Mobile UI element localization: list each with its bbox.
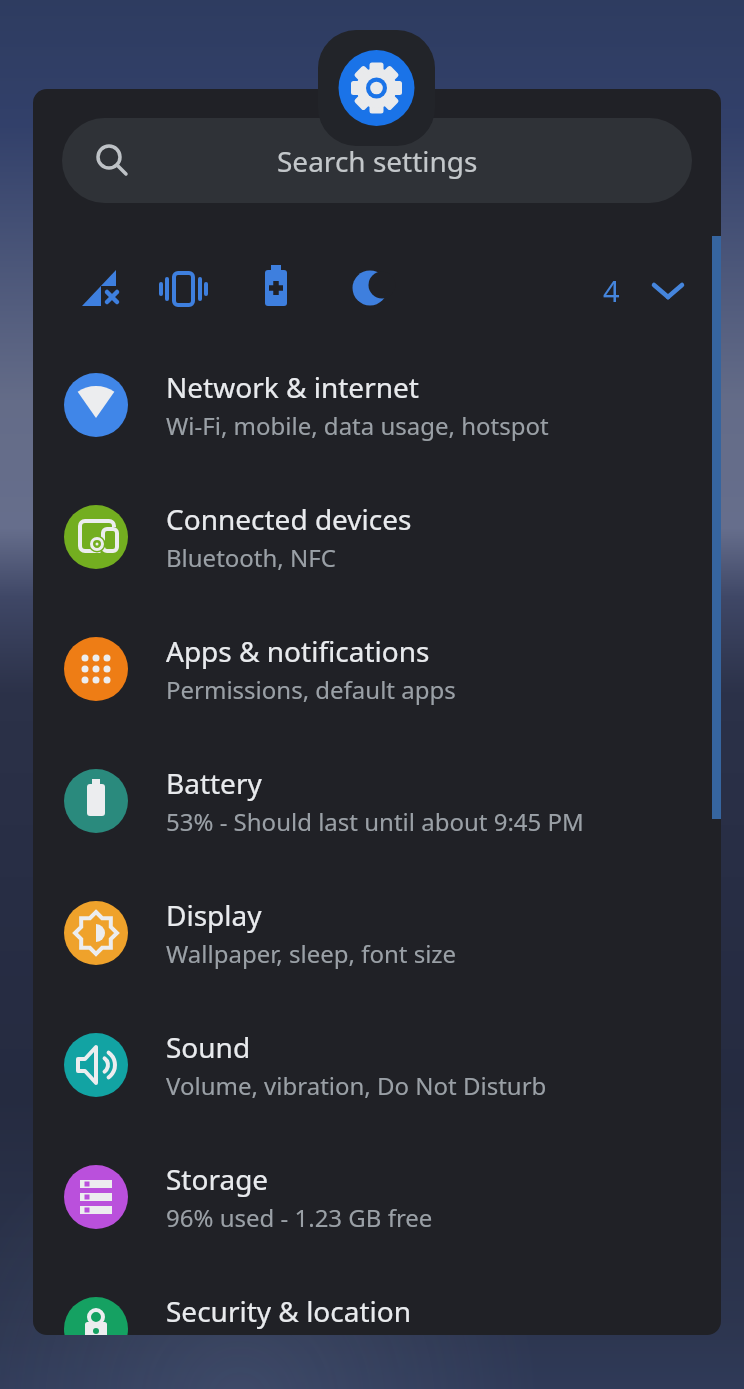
staticText: Search settings (277, 142, 478, 180)
staticText: Apps & notifications (166, 632, 430, 670)
staticText: Wi-Fi, mobile, data usage, hotspot (166, 409, 549, 442)
button[interactable]: Network & internet (33, 339, 721, 471)
staticText: Network & internet (166, 368, 419, 406)
button[interactable]: Storage (33, 1131, 721, 1263)
button[interactable]: Display (33, 867, 721, 999)
staticText: Permissions, default apps (166, 673, 456, 706)
staticText: Security & location (166, 1292, 412, 1330)
button[interactable]: Security & location (33, 1263, 721, 1335)
staticText: Sound (166, 1028, 251, 1066)
staticText: Display (166, 896, 262, 934)
staticText: Volume, vibration, Do Not Disturb (166, 1069, 547, 1102)
staticText: 96% used - 1.23 GB free (166, 1201, 433, 1234)
staticText: 4 (603, 271, 620, 310)
button[interactable] (318, 30, 435, 146)
button[interactable]: Connected devices (33, 471, 721, 603)
button[interactable]: Sound (33, 999, 721, 1131)
button[interactable]: Battery (33, 735, 721, 867)
staticText: Storage (166, 1160, 269, 1198)
staticText: Wallpaper, sleep, font size (166, 937, 457, 970)
staticText: Battery (166, 764, 262, 802)
staticText: 53% - Should last until about 9:45 PM (166, 805, 584, 838)
button[interactable]: Apps & notifications (33, 603, 721, 735)
button[interactable]: Search settings (62, 118, 692, 203)
staticText: Bluetooth, NFC (166, 541, 336, 574)
staticText: Connected devices (166, 500, 412, 538)
button[interactable]: 4 (33, 260, 721, 316)
